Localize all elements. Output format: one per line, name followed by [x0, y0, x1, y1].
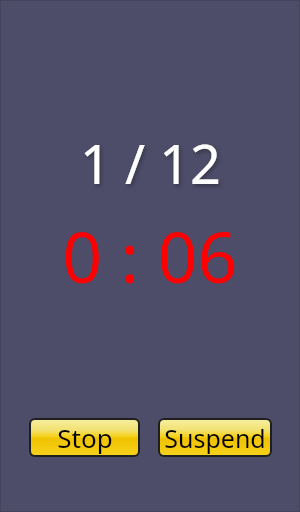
button[interactable]: Stop	[29, 418, 140, 457]
staticText: 0 : 06	[62, 208, 238, 303]
staticText: 1 / 12	[80, 126, 221, 200]
staticText: Stop	[57, 420, 113, 455]
staticText: Suspend	[164, 421, 266, 455]
button[interactable]: Suspend	[158, 418, 272, 457]
